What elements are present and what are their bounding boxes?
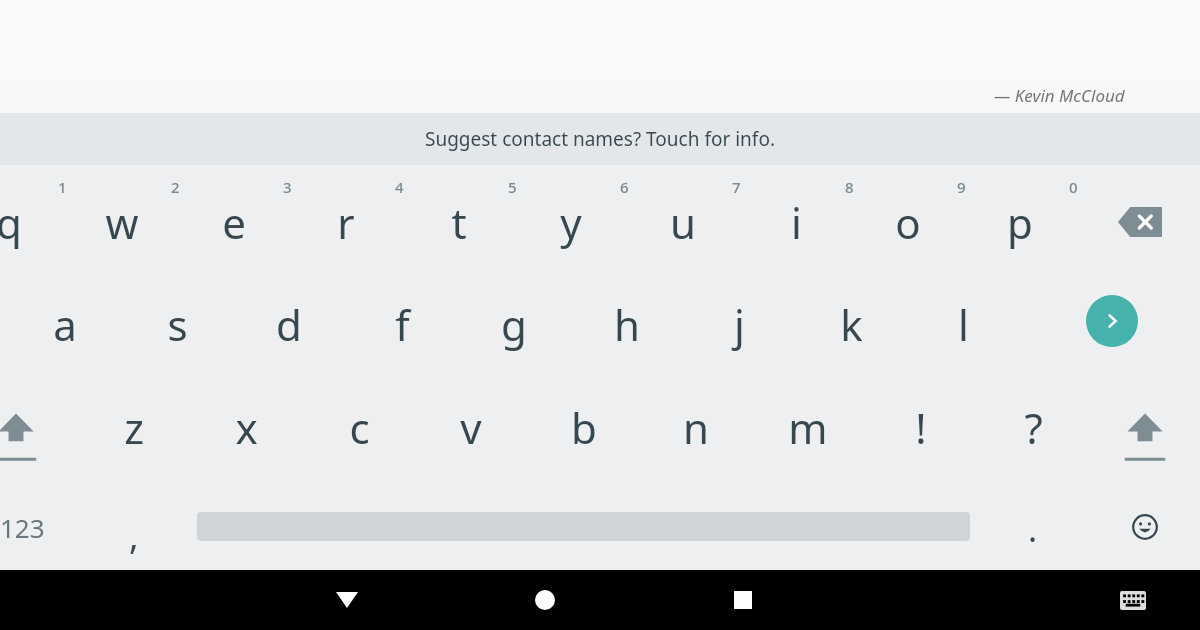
staticText: . [1028,506,1038,552]
button[interactable]: e [194,189,274,255]
button[interactable]: t [419,189,499,255]
staticText: 5 [508,177,517,197]
button[interactable]: p [980,189,1060,255]
button[interactable]: i [756,189,836,255]
button[interactable]: n [656,394,736,460]
staticText: e [222,194,246,251]
staticText: 7 [732,177,741,197]
staticText: 6 [620,177,629,197]
button[interactable]: Shift [0,396,56,472]
button[interactable]: Home [513,570,577,630]
staticText: 0 [1069,177,1078,197]
button[interactable]: Suggest contact names? Touch for info. [0,113,1200,165]
button[interactable]: o [868,189,948,255]
staticText: m [788,399,828,456]
button[interactable]: b [544,394,624,460]
button[interactable]: Emoji [1111,500,1179,554]
staticText: ? [1024,399,1043,456]
button[interactable]: k [811,291,891,357]
button[interactable]: ! [881,394,961,460]
staticText: 2 [171,177,180,197]
button[interactable]: ? [993,394,1073,460]
staticText: w [105,194,139,251]
staticText: u [670,194,696,251]
staticText: z [124,399,144,456]
staticText: , [129,511,139,560]
button[interactable]: Recent apps [711,570,775,630]
button[interactable]: 123 [0,500,56,554]
button[interactable]: w [82,189,162,255]
staticText: 123 [0,510,45,545]
staticText: Suggest contact names? Touch for info. [425,126,775,152]
staticText: x [235,399,258,456]
button[interactable]: a [25,291,105,357]
staticText: d [276,296,302,353]
staticText: r [337,194,355,251]
button[interactable]: d [249,291,329,357]
button[interactable]: q [0,189,49,255]
staticText: s [167,296,188,353]
staticText: i [791,194,802,251]
staticText: g [501,296,527,353]
staticText: l [958,296,969,353]
button[interactable]: Enter [1086,295,1138,347]
staticText: f [395,296,410,353]
staticText: p [1007,194,1033,251]
button[interactable]: m [768,394,848,460]
staticText: 8 [845,177,854,197]
button[interactable]: s [137,291,217,357]
button[interactable]: h [587,291,667,357]
staticText: ! [915,399,927,456]
staticText: h [614,296,640,353]
button[interactable]: y [531,189,611,255]
button[interactable]: . [1003,502,1063,556]
staticText: — Kevin McCloud [994,84,1125,107]
button[interactable]: z [94,394,174,460]
staticText: c [349,399,370,456]
staticText: 9 [957,177,966,197]
staticText: t [451,194,467,251]
button[interactable]: Shift [1105,396,1185,472]
staticText: 3 [283,177,292,197]
staticText: a [53,296,77,353]
staticText: q [0,194,22,251]
button[interactable]: l [923,291,1003,357]
button[interactable]: , [104,508,164,562]
button[interactable]: Backspace [1098,188,1182,256]
staticText: y [560,194,582,251]
staticText: j [734,296,745,353]
button[interactable]: f [362,291,442,357]
staticText: 1 [58,177,67,197]
button[interactable]: x [206,394,286,460]
button[interactable]: r [306,189,386,255]
staticText: v [460,399,482,456]
button[interactable]: v [431,394,511,460]
button[interactable]: c [319,394,399,460]
button[interactable]: g [474,291,554,357]
staticText: 4 [395,177,404,197]
button[interactable]: j [699,291,779,357]
button[interactable]: u [643,189,723,255]
staticText: n [683,399,709,456]
other: Hide keyboard [347,570,1200,630]
staticText: b [571,399,597,456]
staticText: o [895,194,921,251]
button[interactable]: Switch keyboard [1101,570,1165,630]
staticText: k [840,296,863,353]
button[interactable]: Hide keyboard [315,570,379,630]
